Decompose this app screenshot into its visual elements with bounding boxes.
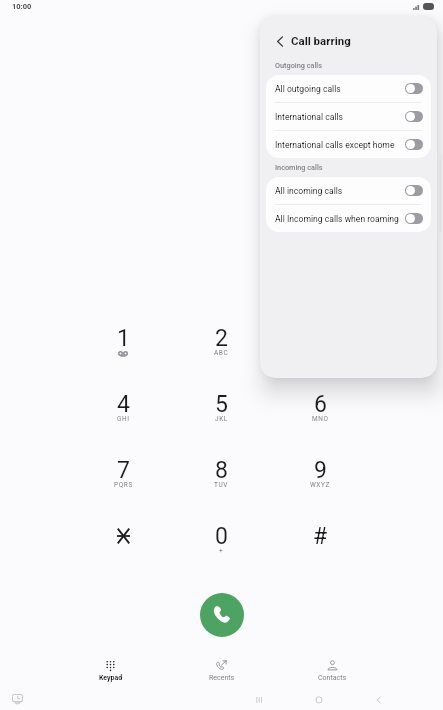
button[interactable]: Call: [200, 593, 244, 637]
staticText: 9: [314, 457, 327, 484]
button[interactable]: Recent apps: [247, 688, 270, 710]
button[interactable]: International calls except home: [266, 131, 431, 158]
button[interactable]: Toggle: [405, 139, 423, 150]
staticText: 8: [215, 457, 228, 484]
staticText: #: [313, 523, 328, 550]
button[interactable]: Hide keyboard: [6, 688, 28, 710]
button[interactable]: 2: [172, 315, 271, 381]
staticText: JKL: [215, 415, 228, 423]
button[interactable]: International calls: [266, 103, 431, 130]
button[interactable]: Toggle: [405, 111, 423, 122]
staticText: ABC: [214, 349, 229, 357]
button[interactable]: Toggle: [405, 83, 423, 94]
staticText: Contacts: [318, 674, 347, 682]
staticText: GHI: [117, 415, 130, 423]
staticText: 1: [117, 325, 130, 352]
staticText: All outgoing calls: [275, 84, 403, 94]
button[interactable]: 8: [172, 447, 271, 513]
staticText: All incoming calls: [275, 186, 403, 196]
button[interactable]: Contacts: [277, 658, 388, 684]
staticText: 6: [314, 391, 327, 418]
staticText: Outgoing calls: [275, 61, 322, 70]
button[interactable]: Recents: [166, 658, 277, 684]
button[interactable]: Toggle: [405, 185, 423, 196]
button[interactable]: Back: [268, 30, 290, 52]
staticText: Recents: [209, 674, 235, 682]
button[interactable]: Home: [307, 688, 330, 710]
button[interactable]: 3: [271, 315, 370, 381]
staticText: International calls: [275, 112, 403, 122]
staticText: 2: [215, 325, 228, 352]
button[interactable]: 7: [74, 447, 172, 513]
button[interactable]: Toggle: [405, 213, 423, 224]
button[interactable]: Keypad: [55, 658, 166, 684]
staticText: +: [219, 547, 224, 555]
staticText: 5: [215, 391, 228, 418]
button[interactable]: #: [271, 513, 370, 579]
staticText: WXYZ: [310, 481, 331, 489]
staticText: All Incoming calls when roaming: [275, 214, 403, 224]
button[interactable]: All incoming calls: [266, 177, 431, 204]
staticText: MNO: [312, 415, 329, 423]
staticText: PQRS: [114, 481, 133, 489]
staticText: 0: [215, 523, 228, 550]
staticText: 10:00: [12, 2, 32, 11]
button[interactable]: 4: [74, 381, 172, 447]
staticText: 4: [117, 391, 130, 418]
staticText: 7: [117, 457, 130, 484]
button[interactable]: Back: [367, 688, 390, 710]
button[interactable]: All Incoming calls when roaming: [266, 205, 431, 232]
button[interactable]: All outgoing calls: [266, 75, 431, 102]
staticText: TUV: [214, 481, 229, 489]
button[interactable]: 1: [74, 315, 172, 381]
button[interactable]: 6: [271, 381, 370, 447]
staticText: Call barring: [291, 34, 351, 47]
staticText: International calls except home: [275, 140, 403, 150]
button[interactable]: 9: [271, 447, 370, 513]
button[interactable]: 5: [172, 381, 271, 447]
button[interactable]: [74, 513, 172, 579]
staticText: Keypad: [99, 674, 123, 682]
button[interactable]: 0: [172, 513, 271, 579]
staticText: Incoming calls: [275, 163, 323, 172]
